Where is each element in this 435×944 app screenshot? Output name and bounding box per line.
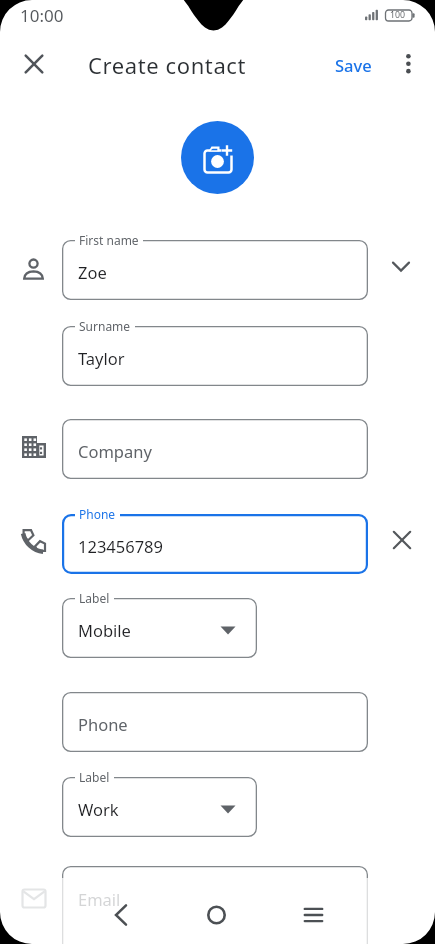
staticText: Label <box>79 769 110 785</box>
button[interactable] <box>387 252 415 280</box>
staticText: Save <box>335 54 372 76</box>
button[interactable]: Phone <box>62 692 368 752</box>
staticText: Company <box>78 440 152 462</box>
button[interactable]: Save <box>333 52 377 78</box>
button[interactable] <box>388 526 416 554</box>
staticText: 10:00 <box>20 4 64 27</box>
staticText: Phone <box>79 506 116 522</box>
staticText: Mobile <box>78 619 131 641</box>
staticText: Label <box>79 590 110 606</box>
staticText: Taylor <box>78 347 125 369</box>
staticText: 123456789 <box>78 535 163 557</box>
button[interactable] <box>394 50 422 78</box>
staticText: Phone <box>78 713 128 735</box>
button[interactable] <box>181 121 254 194</box>
button[interactable] <box>186 891 246 939</box>
button[interactable]: Mobile <box>62 598 257 658</box>
button[interactable] <box>20 50 48 78</box>
staticText: Zoe <box>78 261 107 283</box>
button[interactable] <box>91 891 151 939</box>
button[interactable]: 123456789 <box>62 514 368 574</box>
staticText: Surname <box>79 318 131 334</box>
staticText: Create contact <box>88 50 247 80</box>
staticText: 100 <box>390 9 406 21</box>
button[interactable] <box>283 891 343 939</box>
staticText: Work <box>78 798 119 820</box>
staticText: First name <box>79 232 139 248</box>
button[interactable]: Zoe <box>62 240 368 300</box>
staticText: Email <box>78 888 121 910</box>
button[interactable]: Work <box>62 777 257 837</box>
button[interactable]: Email <box>62 866 368 944</box>
button[interactable]: Taylor <box>62 326 368 386</box>
button[interactable]: Company <box>62 419 368 479</box>
